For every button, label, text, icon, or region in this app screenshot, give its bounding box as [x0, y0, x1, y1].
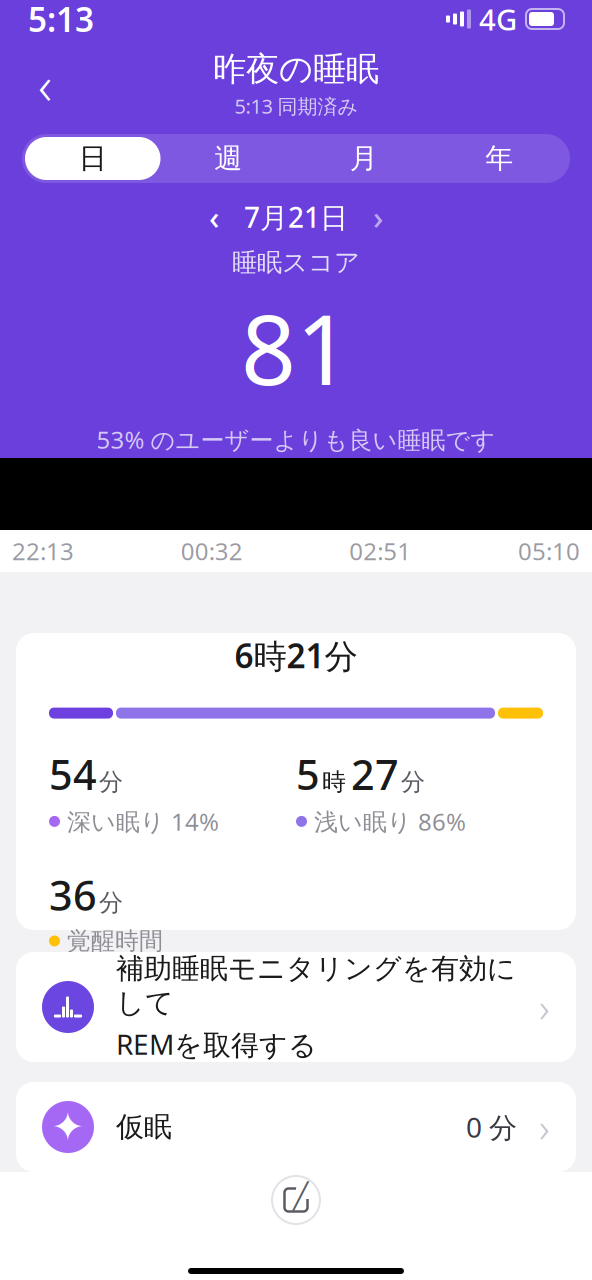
staticText: 53% のユーザーよりも良い睡眠です — [96, 424, 495, 455]
staticText: 5 — [296, 747, 320, 801]
staticText: 分 — [99, 767, 123, 797]
staticText: 分 — [99, 888, 123, 918]
button[interactable]: メモを編集 — [272, 1172, 320, 1228]
staticText: 7月21日 — [244, 198, 348, 236]
staticText: 5:13 — [28, 0, 94, 41]
button[interactable]: ✦ — [0, 1082, 592, 1172]
staticText: 浅い眠り 86% — [314, 805, 466, 837]
staticText: 05:10 — [518, 535, 580, 567]
staticText: 覚醒時間 — [67, 926, 163, 956]
staticText: › — [539, 1100, 550, 1153]
staticText: 00:32 — [181, 535, 243, 567]
staticText: 54 — [49, 747, 97, 801]
staticText: ╱ — [293, 1182, 308, 1210]
staticText: 睡眠スコア — [232, 247, 360, 278]
staticText: › — [539, 980, 550, 1033]
button[interactable]: 次の日 — [356, 195, 400, 239]
staticText: 昨夜の睡眠 — [213, 49, 379, 90]
button[interactable]: 年 — [431, 137, 567, 180]
staticText: › — [373, 196, 383, 238]
button[interactable]: 月 — [296, 137, 431, 180]
staticText: 02:51 — [349, 535, 411, 567]
staticText: 81 — [241, 284, 351, 412]
button[interactable]: 戻る — [18, 57, 72, 111]
staticText: 22:13 — [12, 535, 74, 567]
staticText: 深い眠り 14% — [67, 805, 219, 837]
staticText: 分 — [401, 767, 425, 797]
staticText: 4G — [479, 0, 517, 38]
staticText: 補助睡眠モニタリングを有効にして — [116, 951, 516, 1020]
button[interactable]: 補助睡眠モニタリングを有効にして — [0, 952, 592, 1062]
staticText: ✦ — [51, 1104, 85, 1150]
button[interactable]: 日 — [25, 137, 160, 180]
staticText: ‹ — [209, 196, 219, 238]
staticText: 5:13 同期済み — [234, 93, 357, 119]
staticText: ‹ — [38, 49, 52, 119]
button[interactable]: 週 — [160, 137, 296, 180]
staticText: 仮眠 — [116, 1110, 172, 1144]
staticText: 年 — [485, 141, 513, 176]
staticText: 時 — [322, 767, 346, 797]
staticText: 週 — [214, 141, 242, 176]
staticText: 27 — [351, 747, 399, 801]
staticText: 0 分 — [466, 1108, 517, 1146]
staticText: 月 — [350, 141, 378, 176]
staticText: 36 — [49, 867, 97, 922]
staticText: 日 — [79, 141, 107, 176]
staticText: REMを取得する — [116, 1025, 317, 1062]
staticText: 6時21分 — [234, 633, 357, 678]
button[interactable]: 前の日 — [192, 195, 236, 239]
